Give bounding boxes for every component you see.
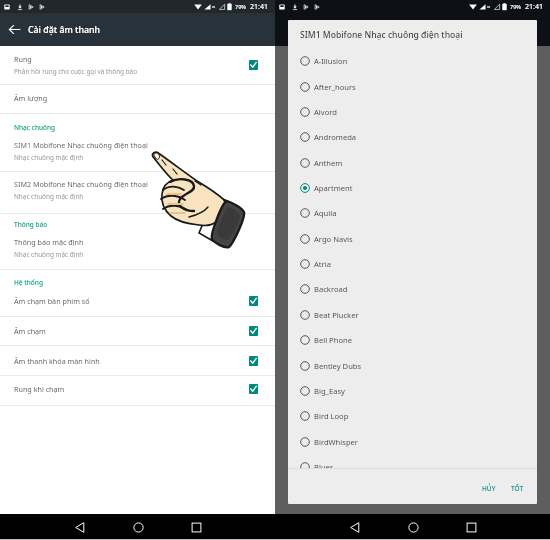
button[interactable]: Aquila	[288, 200, 537, 225]
staticText: Big_Easy	[314, 386, 345, 396]
button[interactable]: Thông báo mặc định	[0, 233, 275, 269]
button[interactable]: Blues	[288, 454, 537, 468]
staticText: Anthem	[314, 158, 343, 168]
staticText: ıx	[212, 4, 216, 9]
staticText: Phản hồi rung cho cuộc gọi và thông báo	[14, 67, 138, 76]
staticText: TỐT	[511, 484, 524, 493]
button[interactable]: Toggle	[244, 56, 262, 74]
button[interactable]: Âm chạm bàn phím số	[0, 289, 275, 316]
staticText: SIM1 Mobifone Nhạc chuông điện thoại	[14, 140, 148, 150]
button[interactable]: Âm lượng	[0, 85, 275, 113]
button[interactable]: A-Illusion	[288, 50, 537, 73]
button[interactable]: Home	[402, 516, 424, 538]
button[interactable]: Back	[69, 516, 91, 538]
button[interactable]: Big_Easy	[288, 378, 537, 403]
button[interactable]: SIM2 Mobifone Nhạc chuông điện thoại	[0, 172, 275, 213]
staticText: Thông báo	[14, 220, 48, 229]
button[interactable]: SIM1 Mobifone Nhạc chuông điện thoại	[0, 133, 275, 171]
staticText: SIM1 Mobifone Nhạc chuông điện thoại	[300, 29, 463, 41]
staticText: Beat Plucker	[314, 310, 359, 320]
button[interactable]: Atria	[288, 251, 537, 276]
staticText: After_hours	[314, 82, 356, 92]
button[interactable]: Toggle	[244, 352, 262, 370]
button[interactable]: Backroad	[288, 276, 537, 301]
button[interactable]: Beat Plucker	[288, 302, 537, 327]
button[interactable]: Recent apps	[460, 516, 482, 538]
staticText: Rung	[14, 54, 32, 64]
button[interactable]: Âm thanh khóa màn hình	[0, 346, 275, 375]
button[interactable]: Alvord	[288, 99, 537, 124]
staticText: BirdWhisper	[314, 437, 358, 447]
button[interactable]: After_hours	[288, 74, 537, 99]
button[interactable]: Apartment	[288, 175, 537, 200]
staticText: SIM2 Mobifone Nhạc chuông điện thoại	[14, 179, 148, 189]
staticText: Âm chạm	[14, 326, 46, 336]
button[interactable]: Home	[127, 516, 149, 538]
button[interactable]: Anthem	[288, 150, 537, 175]
staticText: 21:41	[525, 2, 543, 12]
staticText: Bird Loop	[314, 411, 349, 421]
staticText: Cài đặt âm thanh	[28, 24, 101, 36]
staticText: Atria	[314, 259, 331, 269]
staticText: Backroad	[314, 284, 348, 294]
staticText: A-Illusion	[314, 56, 348, 66]
button[interactable]: Rung khi chạm	[0, 376, 275, 405]
staticText: Hệ thống	[14, 278, 43, 287]
button[interactable]: HỦY	[475, 479, 503, 498]
staticText: Rung khi chạm	[14, 384, 65, 394]
button[interactable]: Recent apps	[185, 516, 207, 538]
button[interactable]: Toggle	[244, 322, 262, 340]
staticText: Nhạc chuông mặc định	[14, 153, 84, 162]
button[interactable]: TỐT	[504, 479, 531, 498]
staticText: ıx	[487, 4, 491, 9]
staticText: Aquila	[314, 208, 337, 218]
button[interactable]: Argo Navis	[288, 226, 537, 251]
button[interactable]: Bentley Dubs	[288, 353, 537, 378]
staticText: Thông báo mặc định	[14, 237, 84, 247]
staticText: 79%	[235, 3, 246, 10]
staticText: Alvord	[314, 107, 337, 117]
staticText: 79%	[510, 3, 521, 10]
button[interactable]: Andromeda	[288, 124, 537, 149]
button[interactable]: Âm chạm	[0, 317, 275, 345]
button[interactable]: Rung	[0, 46, 275, 84]
button[interactable]: Bird Loop	[288, 403, 537, 428]
staticText: Andromeda	[314, 132, 357, 142]
button[interactable]: Toggle	[244, 292, 262, 310]
staticText: Âm chạm bàn phím số	[14, 296, 90, 306]
staticText: Bell Phone	[314, 335, 352, 345]
button[interactable]: Back	[344, 516, 366, 538]
staticText: HỦY	[482, 484, 496, 493]
staticText: Nhạc chuông	[14, 123, 56, 132]
button[interactable]: Toggle	[244, 380, 262, 398]
staticText: Nhạc chuông mặc định	[14, 250, 84, 259]
button[interactable]: Back	[6, 21, 23, 38]
staticText: Âm lượng	[14, 93, 48, 103]
staticText: Apartment	[314, 183, 353, 193]
staticText: Blues	[314, 462, 334, 468]
staticText: Nhạc chuông mặc định	[14, 192, 84, 201]
button[interactable]: Bell Phone	[288, 327, 537, 352]
staticText: Âm thanh khóa màn hình	[14, 356, 100, 366]
staticText: Bentley Dubs	[314, 361, 362, 371]
staticText: 21:41	[250, 2, 268, 12]
button[interactable]: BirdWhisper	[288, 429, 537, 454]
staticText: Argo Navis	[314, 234, 353, 244]
